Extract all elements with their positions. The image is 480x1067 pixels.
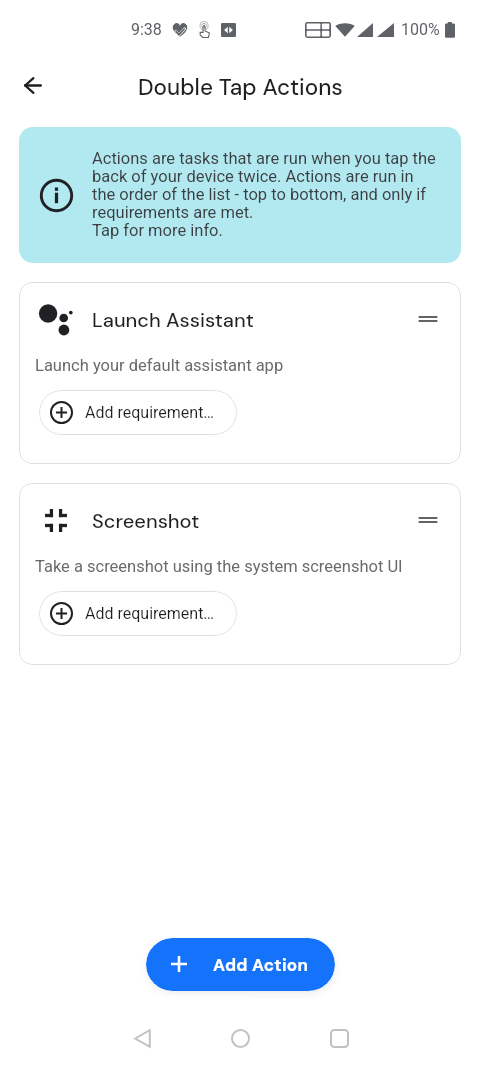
button[interactable]: Home	[216, 1014, 264, 1062]
button[interactable]: Reorder	[408, 500, 448, 540]
button[interactable]: Actions are tasks that are run when you …	[19, 127, 461, 263]
button[interactable]: Recents	[315, 1014, 363, 1062]
staticText: Actions are tasks that are run when you …	[92, 149, 436, 239]
button[interactable]: Add requirement…	[39, 591, 237, 636]
button[interactable]: Back	[118, 1014, 166, 1062]
staticText: 9:38	[131, 20, 162, 39]
button[interactable]: Back	[10, 62, 56, 108]
staticText: Launch your default assistant app	[35, 356, 284, 375]
staticText: Take a screenshot using the system scree…	[35, 557, 403, 576]
staticText: Add Action	[213, 954, 309, 976]
staticText: Double Tap Actions	[138, 73, 343, 102]
staticText: 100%	[401, 20, 440, 39]
staticText: Add requirement…	[85, 403, 215, 422]
button[interactable]: Reorder	[408, 299, 448, 339]
button[interactable]: Launch Assistant	[19, 282, 461, 464]
button[interactable]: Add Action	[146, 938, 335, 991]
staticText: Add requirement…	[85, 604, 215, 623]
staticText: Screenshot	[92, 508, 200, 534]
button[interactable]: Add requirement…	[39, 390, 237, 435]
button[interactable]: Screenshot	[19, 483, 461, 665]
staticText: Launch Assistant	[92, 307, 254, 333]
